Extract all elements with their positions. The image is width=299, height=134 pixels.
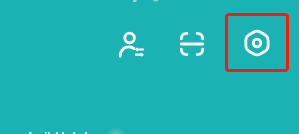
- button[interactable]: Switch account: [112, 26, 148, 62]
- button[interactable]: Scan: [175, 25, 211, 61]
- button[interactable]: Settings: [241, 27, 273, 59]
- staticText: Available balance: [27, 129, 111, 134]
